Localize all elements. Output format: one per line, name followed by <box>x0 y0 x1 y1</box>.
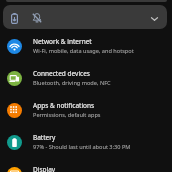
button[interactable]: Apps & notifications <box>0 94 172 126</box>
button[interactable]: Display <box>0 158 172 172</box>
staticText: 97% - Should last until about 3:30 PM <box>33 143 131 151</box>
staticText: Apps & notifications <box>33 101 95 110</box>
staticText: Permissions, default apps <box>33 111 101 119</box>
button[interactable] <box>3 5 167 29</box>
staticText: Network & internet <box>33 37 92 46</box>
button[interactable]: Network & internet <box>0 30 172 62</box>
staticText: Connected devices <box>33 69 90 78</box>
button[interactable]: Connected devices <box>0 62 172 94</box>
button[interactable]: Battery <box>0 126 172 158</box>
staticText: Bluetooth, driving mode, NFC <box>33 79 111 87</box>
staticText: Battery <box>33 133 56 142</box>
staticText: Wi-Fi, mobile, data usage, and hotspot <box>33 47 134 55</box>
staticText: Display <box>33 165 56 172</box>
